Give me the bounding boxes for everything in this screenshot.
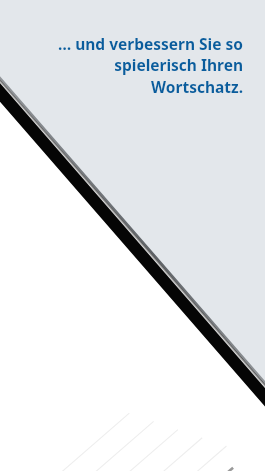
button[interactable]: … und verbessern Sie so spielerisch Ihre…: [16, 33, 243, 98]
staticText: … und verbessern Sie so spielerisch Ihre…: [57, 33, 243, 98]
button[interactable]: Smartphone mit Vokabeltrainer: [0, 0, 265, 471]
